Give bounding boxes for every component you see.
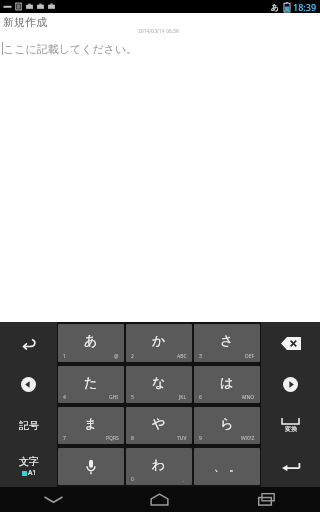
button[interactable]: 音声入力 <box>58 448 124 485</box>
button[interactable]: 、 <box>194 448 260 485</box>
staticText: か <box>152 332 166 348</box>
button[interactable]: 左へ <box>0 364 57 405</box>
staticText: TUV <box>177 435 187 442</box>
button[interactable]: さ <box>194 324 260 362</box>
button[interactable]: ら <box>194 407 260 444</box>
staticText: 文字 <box>19 455 39 468</box>
staticText: GHI <box>109 394 119 401</box>
button[interactable]: 最近のアプリ <box>213 487 320 512</box>
staticText: 新規作成 <box>3 15 47 29</box>
staticText: さ <box>220 332 234 348</box>
staticText: 0 <box>131 476 134 483</box>
staticText: ここに記載してください。 <box>3 42 138 56</box>
button[interactable]: た <box>58 366 124 403</box>
staticText: た <box>84 374 98 390</box>
staticText: 。 <box>229 460 240 474</box>
staticText: A1 <box>28 468 37 478</box>
button[interactable]: 削除 <box>261 322 320 364</box>
button[interactable]: か <box>126 324 192 362</box>
button[interactable]: や <box>126 407 192 444</box>
staticText: 6 <box>199 394 202 401</box>
staticText: 2014/03/14 06:39 <box>138 28 179 35</box>
button[interactable]: 記号 <box>0 405 57 446</box>
staticText: な <box>152 374 166 390</box>
button[interactable]: な <box>126 366 192 403</box>
staticText: は <box>220 374 234 390</box>
staticText: 1 <box>63 353 66 360</box>
staticText: あ <box>84 332 98 348</box>
staticText: 、 <box>214 460 225 474</box>
staticText: DEF <box>245 353 255 360</box>
button[interactable]: ま <box>58 407 124 444</box>
button[interactable]: 右へ <box>261 364 320 405</box>
staticText: や <box>152 415 166 431</box>
staticText: 4 <box>63 394 66 401</box>
button[interactable]: あ <box>58 324 124 362</box>
button[interactable]: 元に戻す <box>0 322 57 364</box>
staticText: 8 <box>131 435 134 442</box>
staticText: MNO <box>242 394 255 401</box>
staticText: 18:39 <box>293 1 317 13</box>
button[interactable]: は <box>194 366 260 403</box>
staticText: あ <box>271 2 280 12</box>
staticText: ら <box>220 415 234 431</box>
button[interactable]: キーボードを閉じる <box>0 487 106 512</box>
button[interactable]: 文字種切替 <box>0 446 57 487</box>
staticText: 記号 <box>19 419 39 432</box>
button[interactable]: 改行 <box>261 446 320 487</box>
staticText: 変換 <box>285 425 297 433</box>
button[interactable]: ホーム <box>106 487 213 512</box>
staticText: WXYZ <box>241 435 255 442</box>
staticText: 9 <box>199 435 202 442</box>
staticText: 7 <box>63 435 66 442</box>
button[interactable]: 変換 <box>261 405 320 446</box>
staticText: 2 <box>131 353 134 360</box>
button[interactable]: わ <box>126 448 192 485</box>
staticText: 5 <box>131 394 134 401</box>
staticText: PQRS <box>106 435 119 442</box>
staticText: 、 <box>182 476 187 482</box>
staticText: JKL <box>179 394 187 401</box>
staticText: ABC <box>177 353 187 360</box>
staticText: @ <box>114 353 119 360</box>
staticText: 3 <box>199 353 202 360</box>
staticText: ま <box>84 415 98 431</box>
staticText: わ <box>152 456 166 472</box>
